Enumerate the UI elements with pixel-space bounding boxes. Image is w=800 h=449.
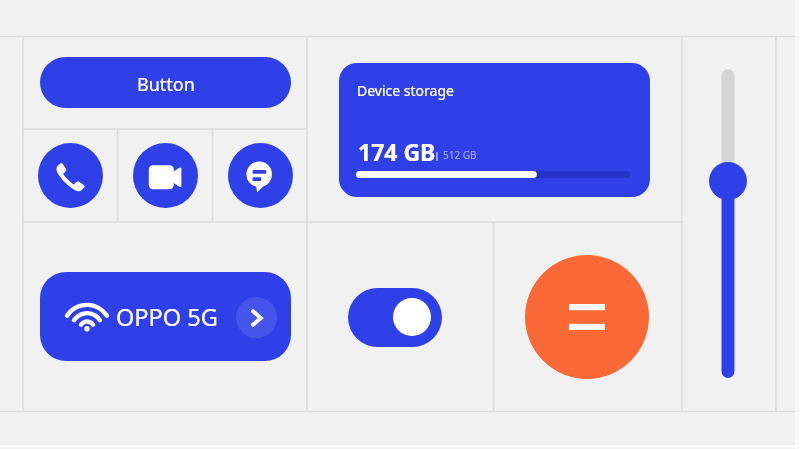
button[interactable]: Button <box>40 57 291 108</box>
staticText: 174 GB <box>358 136 436 167</box>
button[interactable]: Open network details <box>236 297 277 338</box>
staticText: Device storage <box>357 81 454 100</box>
button[interactable]: Video call <box>133 143 198 208</box>
button[interactable]: Toggle setting <box>348 288 442 347</box>
staticText: OPPO 5G <box>116 301 218 333</box>
staticText: 512 GB <box>443 148 477 162</box>
button[interactable]: OPPO 5G <box>40 272 291 361</box>
button[interactable]: Equals <box>525 255 649 379</box>
button[interactable]: Message <box>228 143 293 208</box>
button[interactable]: Volume slider <box>705 58 751 386</box>
button[interactable]: Call <box>38 143 103 208</box>
staticText: Button <box>137 72 195 97</box>
button[interactable]: Device storage <box>339 63 650 197</box>
